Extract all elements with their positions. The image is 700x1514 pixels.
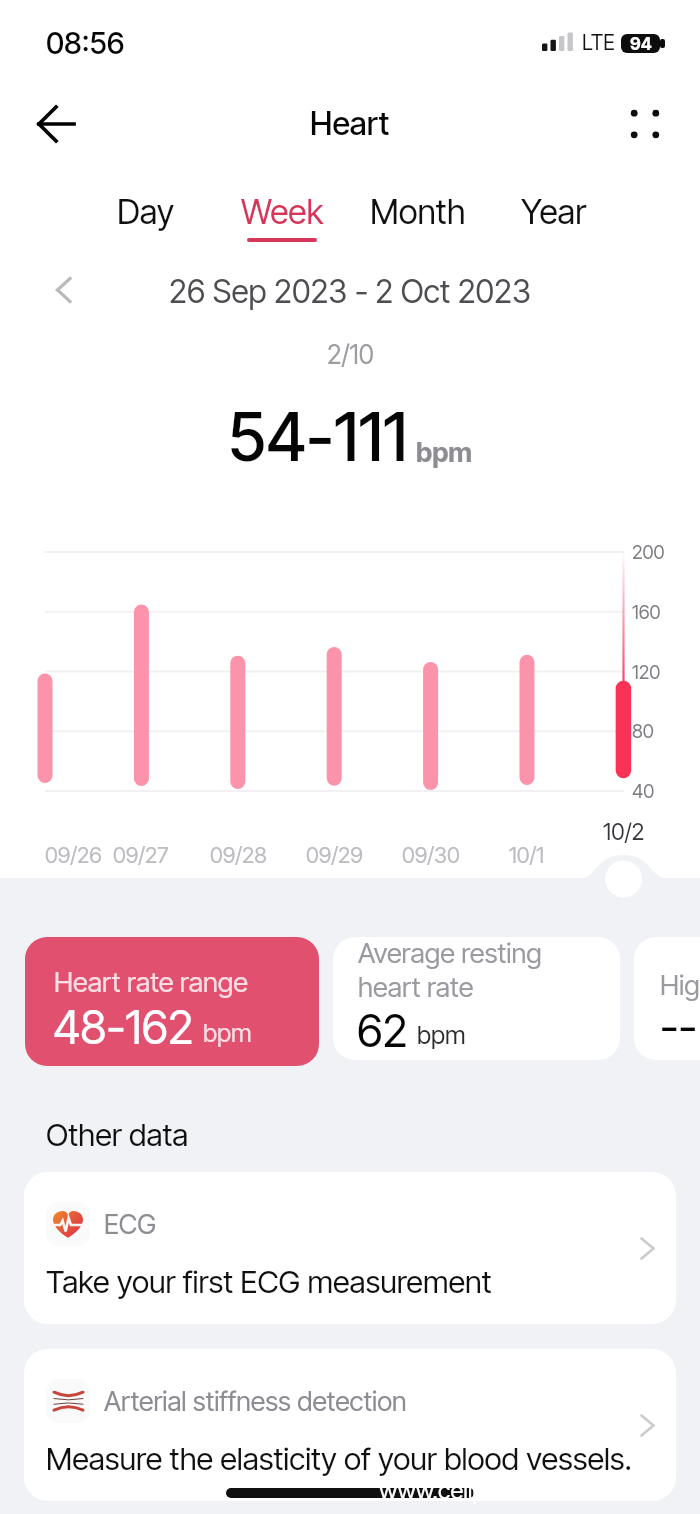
staticText: bpm bbox=[417, 1020, 466, 1050]
staticText: 48-162 bbox=[53, 999, 194, 1055]
staticText: 62 bbox=[357, 1003, 408, 1057]
staticText: 09/29 bbox=[306, 842, 363, 869]
button[interactable]: ECG bbox=[24, 1172, 676, 1324]
staticText: 08:56 bbox=[46, 25, 125, 61]
staticText: -- bbox=[660, 999, 698, 1053]
button[interactable]: Average resting bbox=[333, 937, 620, 1060]
staticText: 120 bbox=[632, 661, 661, 684]
staticText: 26 Sep 2023 - 2 Oct 2023 bbox=[169, 272, 531, 311]
button[interactable]: Week bbox=[214, 191, 350, 253]
staticText: Month bbox=[370, 191, 466, 232]
button[interactable]: Previous week bbox=[40, 265, 86, 315]
staticText: 160 bbox=[632, 601, 661, 624]
staticText: Arterial stiffness detection bbox=[104, 1385, 407, 1418]
staticText: 10/1 bbox=[509, 842, 545, 869]
staticText: 200 bbox=[632, 541, 665, 564]
staticText: 09/27 bbox=[113, 842, 169, 869]
button[interactable]: High bbox=[634, 937, 700, 1060]
staticText: Take your first ECG measurement bbox=[46, 1263, 492, 1301]
staticText: 2/10 bbox=[327, 339, 374, 370]
staticText: 09/28 bbox=[210, 842, 267, 869]
staticText: Year bbox=[521, 191, 587, 232]
button[interactable]: Year bbox=[486, 191, 622, 253]
button[interactable]: Heart rate range bbox=[25, 937, 319, 1066]
staticText: 09/26 bbox=[45, 842, 102, 869]
staticText: 10/2 bbox=[603, 818, 645, 846]
staticText: bpm bbox=[416, 436, 473, 469]
staticText: www.cellphones.com.vn bbox=[379, 1476, 632, 1505]
button[interactable]: Back bbox=[26, 96, 88, 152]
button[interactable]: Month bbox=[350, 191, 486, 253]
staticText: LTE bbox=[582, 30, 615, 55]
staticText: 09/30 bbox=[402, 842, 460, 869]
staticText: High bbox=[660, 968, 700, 1001]
staticText: Day bbox=[117, 191, 175, 232]
button[interactable]: More options bbox=[616, 95, 674, 153]
staticText: 94 bbox=[630, 34, 652, 53]
staticText: Heart rate range bbox=[54, 965, 248, 998]
staticText: heart rate bbox=[358, 970, 474, 1003]
staticText: 40 bbox=[632, 780, 655, 803]
staticText: ECG bbox=[104, 1208, 157, 1241]
staticText: Measure the elasticity of your blood ves… bbox=[46, 1440, 632, 1478]
staticText: Week bbox=[241, 191, 324, 232]
staticText: 80 bbox=[632, 720, 654, 743]
button[interactable]: Day bbox=[78, 191, 214, 253]
button[interactable]: Arterial stiffness detection bbox=[24, 1349, 676, 1501]
staticText: Average resting bbox=[358, 937, 542, 969]
staticText: Other data bbox=[46, 1116, 189, 1154]
staticText: 54-111 bbox=[228, 397, 408, 477]
staticText: Heart bbox=[310, 104, 390, 143]
staticText: bpm bbox=[203, 1018, 252, 1048]
